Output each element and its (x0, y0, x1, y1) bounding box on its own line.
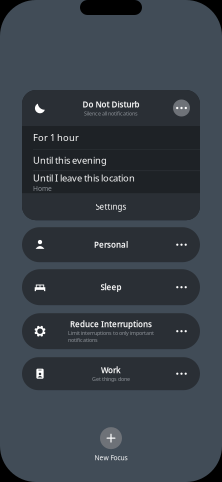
button[interactable]: Sleep (22, 269, 200, 305)
staticText: Work (101, 365, 121, 375)
staticText: Do Not Disturb (82, 99, 139, 110)
staticText: Sleep (100, 282, 121, 292)
staticText: New Focus (94, 453, 127, 462)
staticText: Settings (95, 201, 126, 212)
staticText: Home (33, 184, 52, 193)
staticText: Get things done (92, 375, 130, 383)
staticText: Personal (94, 239, 128, 250)
staticText: Silence all notifications (84, 110, 138, 117)
button[interactable]: Reduce Interruptions (22, 313, 200, 349)
button[interactable]: Until I leave this location (22, 171, 200, 193)
staticText: Limit interruptions to only important no… (68, 329, 154, 344)
button[interactable]: Personal (22, 227, 200, 262)
button[interactable]: Settings (22, 193, 200, 220)
button[interactable]: Do Not Disturb (22, 90, 200, 126)
button[interactable]: Until this evening (22, 150, 200, 171)
staticText: Until this evening (33, 154, 107, 166)
button[interactable]: Work (22, 357, 200, 390)
button[interactable]: For 1 hour (22, 126, 200, 149)
staticText: Until I leave this location (33, 172, 135, 184)
staticText: Reduce Interruptions (70, 319, 152, 329)
staticText: For 1 hour (33, 131, 79, 144)
button[interactable]: New Focus (94, 427, 127, 462)
